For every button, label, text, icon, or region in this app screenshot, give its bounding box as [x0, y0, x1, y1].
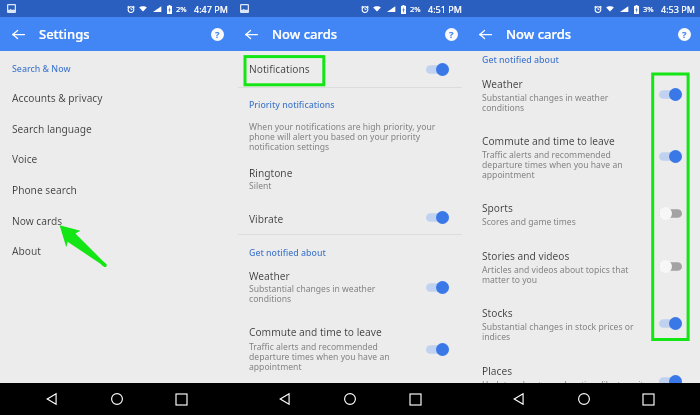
staticText: Vibrate [249, 212, 284, 226]
staticText: Weather [482, 77, 523, 91]
button[interactable]: Commute and time to leave [233, 323, 467, 377]
button[interactable]: Places [467, 363, 700, 391]
button[interactable]: Switch on [659, 317, 682, 330]
button[interactable]: Notifications [233, 55, 467, 85]
staticText: Accounts & privacy [12, 91, 103, 105]
staticText: About [12, 244, 41, 258]
button[interactable]: Navigate up [240, 23, 262, 45]
staticText: 4:53 PM [661, 3, 695, 15]
button[interactable]: Now cards [0, 207, 233, 235]
staticText: Updates about your location, like transi… [482, 379, 644, 391]
staticText: When your notifications are high priorit… [249, 121, 436, 153]
staticText: Settings [39, 25, 90, 43]
staticText: Substantial changes in stock prices or i… [482, 321, 634, 343]
button[interactable]: Commute and time to leave [467, 133, 700, 181]
button[interactable]: Weather [233, 267, 467, 311]
button[interactable]: Home [107, 389, 127, 409]
staticText: Places [482, 364, 513, 378]
button[interactable]: Search language [0, 115, 233, 143]
staticText: ? [215, 28, 220, 41]
staticText: Articles and videos about topics that ma… [482, 264, 629, 286]
staticText: ? [682, 28, 687, 41]
staticText: Silent [249, 180, 272, 192]
button[interactable]: Voice [0, 145, 233, 173]
staticText: Voice [12, 152, 38, 166]
staticText: Now cards [12, 214, 63, 228]
staticText: Traffic alerts and recommended departure… [249, 341, 390, 373]
button[interactable]: Switch on [426, 211, 449, 224]
button[interactable]: Stocks [467, 305, 700, 343]
button[interactable]: Back [509, 389, 529, 409]
button[interactable]: Phone search [0, 176, 233, 204]
button[interactable]: Switch on [659, 88, 682, 101]
button[interactable]: Help [442, 25, 460, 43]
button[interactable]: Recent apps [171, 389, 191, 409]
button[interactable]: Weather [467, 76, 700, 114]
staticText: 3% [643, 4, 654, 14]
staticText: 2% [410, 4, 421, 14]
button[interactable]: Home [574, 389, 594, 409]
button[interactable]: Switch on [426, 281, 449, 294]
staticText: Commute and time to leave [482, 134, 615, 148]
staticText: Phone search [12, 183, 77, 197]
staticText: Get notified about [482, 54, 559, 66]
staticText: Search language [12, 122, 92, 136]
staticText: Ringtone [249, 166, 293, 180]
button[interactable]: Home [340, 389, 360, 409]
staticText: Substantial changes in weather condition… [482, 92, 609, 114]
button[interactable]: Switch off [659, 207, 682, 220]
button[interactable]: Navigate up [7, 23, 29, 45]
button[interactable]: Switch on [659, 375, 682, 388]
button[interactable]: Sports [467, 200, 700, 228]
staticText: Commute and time to leave [249, 325, 382, 339]
button[interactable]: Switch on [426, 63, 449, 76]
staticText: Get notified about [249, 247, 326, 259]
button[interactable]: Recent apps [405, 389, 425, 409]
button[interactable]: Navigate up [474, 23, 496, 45]
staticText: Weather [249, 269, 290, 283]
staticText: 4:51 PM [428, 3, 462, 15]
staticText: Traffic alerts and recommended departure… [482, 149, 623, 181]
button[interactable]: Back [275, 389, 295, 409]
button[interactable]: About [0, 237, 233, 265]
staticText: 2% [176, 4, 187, 14]
button[interactable]: Recent apps [638, 389, 658, 409]
button[interactable]: Back [42, 389, 62, 409]
button[interactable]: Switch on [426, 343, 449, 356]
staticText: Stories and videos [482, 249, 570, 263]
staticText: Priority notifications [249, 99, 335, 111]
button[interactable]: Vibrate [233, 209, 467, 233]
staticText: Sports [482, 201, 513, 215]
staticText: 4:47 PM [194, 3, 228, 15]
button[interactable]: Switch off [659, 260, 682, 273]
button[interactable]: Switch on [659, 150, 682, 163]
button[interactable]: Help [675, 25, 693, 43]
staticText: Now cards [506, 25, 572, 43]
staticText: Search & Now [12, 63, 71, 75]
staticText: Stocks [482, 306, 513, 320]
staticText: ? [449, 28, 454, 41]
staticText: Scores and game times [482, 216, 576, 228]
staticText: Substantial changes in weather condition… [249, 283, 376, 305]
button[interactable]: Stories and videos [467, 248, 700, 286]
button[interactable]: Help [208, 25, 226, 43]
button[interactable]: Ringtone [233, 165, 467, 195]
button[interactable]: Accounts & privacy [0, 84, 233, 112]
staticText: Now cards [272, 25, 338, 43]
staticText: Notifications [249, 62, 310, 76]
